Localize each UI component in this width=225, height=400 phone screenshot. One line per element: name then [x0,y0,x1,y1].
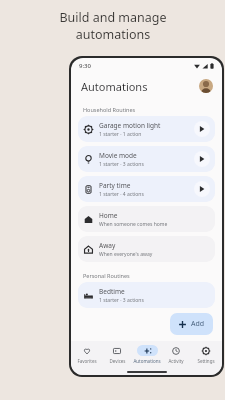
staticText: Activity [168,358,184,364]
staticText: 1 starter · 4 actions [99,191,144,198]
staticText: 9:30 [79,62,91,70]
staticText: Automations [133,358,161,364]
button[interactable]: Movie mode [78,146,215,172]
staticText: Garage motion light [99,121,161,130]
staticText: When everyone's away [99,251,153,258]
button[interactable]: Play routine [194,151,210,167]
button[interactable]: Favorites [73,345,101,364]
staticText: Add [191,319,205,329]
staticText: Away [99,241,116,250]
staticText: 1 starter · 3 actions [99,297,144,304]
staticText: 1 starter · 3 actions [99,161,144,168]
staticText: Personal Routines [83,272,130,279]
staticText: Settings [197,358,215,364]
button[interactable]: Activity [162,345,190,364]
staticText: When someone comes home [99,221,168,228]
button[interactable]: Bedtime [78,282,215,308]
button[interactable]: Automations [133,345,161,364]
button[interactable]: Add [170,313,213,335]
button[interactable]: Account [199,79,213,93]
button[interactable]: Play routine [194,181,210,197]
staticText: Favorites [77,358,97,364]
staticText: Devices [109,358,126,364]
button[interactable]: Home [78,206,215,232]
staticText: Party time [99,181,131,190]
button[interactable]: Garage motion light [78,116,215,142]
staticText: Movie mode [99,151,137,160]
other: Add [178,320,187,329]
staticText: Home [99,211,118,220]
button[interactable]: Party time [78,176,215,202]
button[interactable]: Devices [103,345,131,364]
button[interactable]: Away [78,236,215,262]
button[interactable]: Settings [192,345,220,364]
staticText: 1 starter · 1 action [99,131,142,138]
staticText: Automations [81,79,148,94]
staticText: Bedtime [99,287,125,296]
staticText: Build and manage automations [59,9,167,42]
staticText: Household Routines [83,106,136,113]
button[interactable]: Play routine [194,121,210,137]
